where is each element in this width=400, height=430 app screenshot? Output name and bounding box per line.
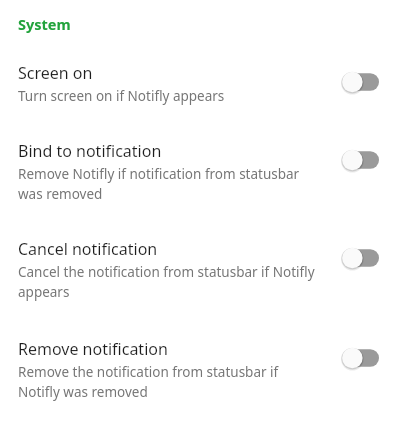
staticText: Remove notification [18, 338, 168, 360]
button[interactable]: Bind to notification [0, 140, 400, 238]
staticText: Remove the notification from statusbar i… [18, 363, 322, 401]
staticText: System [18, 14, 71, 34]
staticText: Bind to notification [18, 140, 162, 162]
button[interactable]: Toggle Cancel notification [334, 243, 386, 273]
staticText: Screen on [18, 62, 93, 84]
button[interactable]: Toggle Bind to notification [334, 145, 386, 175]
button[interactable]: Toggle Screen on [334, 67, 386, 97]
staticText: Cancel the notification from statusbar i… [18, 263, 322, 301]
staticText: Cancel notification [18, 238, 158, 260]
button[interactable]: Cancel notification [0, 238, 400, 338]
staticText: Remove Notifly if notification from stat… [18, 165, 322, 203]
button[interactable]: Screen on [0, 62, 400, 140]
staticText: Turn screen on if Notifly appears [18, 87, 225, 105]
button[interactable]: Toggle Remove notification [334, 343, 386, 373]
button[interactable]: Remove notification [0, 338, 400, 418]
